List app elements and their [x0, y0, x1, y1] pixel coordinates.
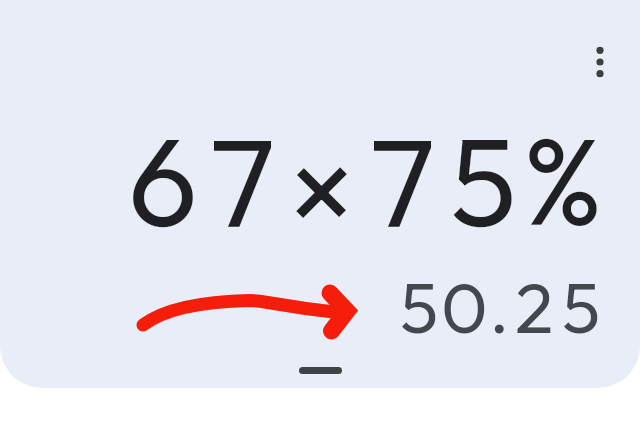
staticText: × — [288, 110, 355, 266]
staticText: 7 — [210, 103, 276, 259]
staticText: 5 — [450, 102, 517, 258]
staticText: . — [489, 262, 510, 351]
staticText: 5 — [562, 262, 601, 351]
staticText: 0 — [441, 262, 488, 351]
staticText: 7 — [370, 103, 436, 259]
staticText: 5 — [400, 262, 439, 351]
staticText: 6 — [128, 102, 198, 258]
staticText: 2 — [515, 262, 554, 351]
button[interactable]: More options — [584, 46, 616, 78]
staticText: % — [523, 103, 603, 255]
